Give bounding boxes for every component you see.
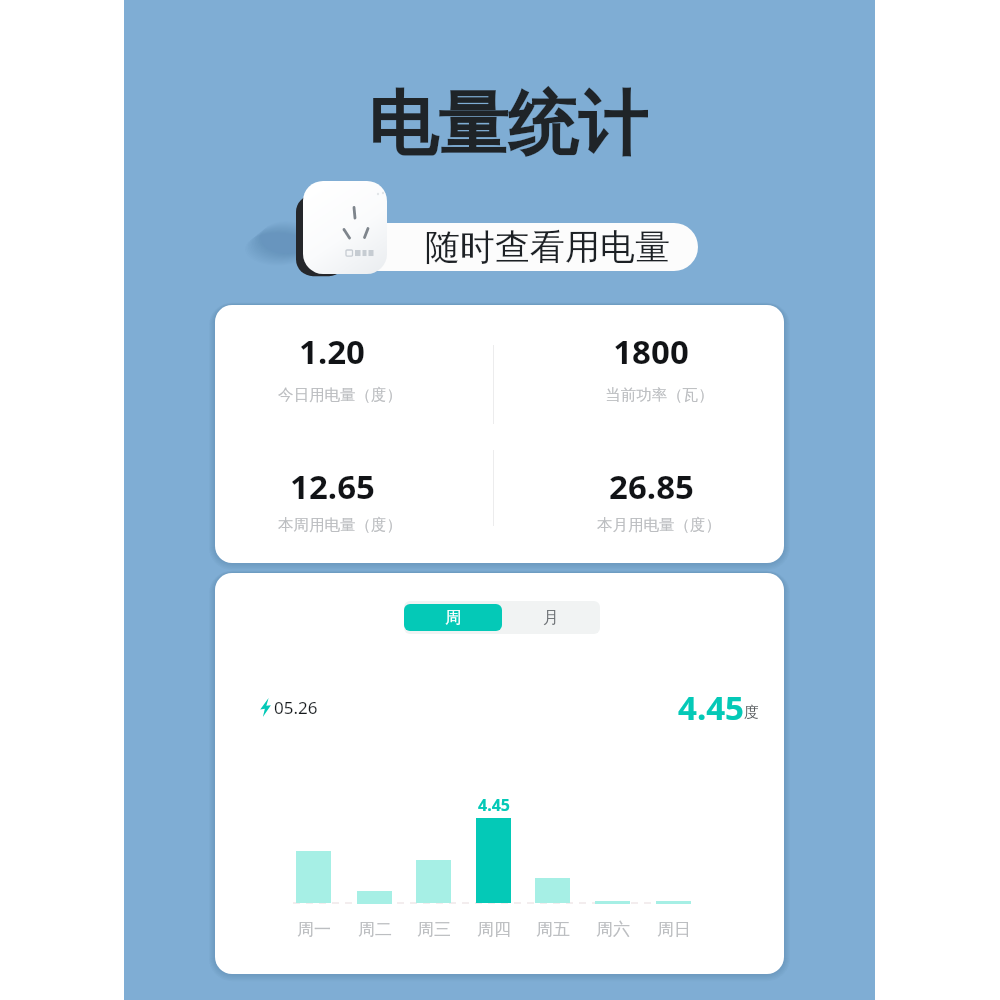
staticText: 今日用电量（度） [278, 385, 402, 405]
button[interactable] [494, 445, 784, 555]
staticText: 26.85 [609, 464, 694, 509]
staticText: 12.65 [290, 464, 375, 509]
staticText: 周二 [358, 919, 392, 940]
button[interactable] [494, 315, 784, 425]
staticText: 4.45 [678, 685, 744, 730]
staticText: 周日 [657, 919, 691, 940]
staticText: 周三 [417, 919, 451, 940]
staticText: 电量统计 [368, 81, 648, 161]
staticText: 05.26 [274, 696, 318, 719]
button[interactable] [215, 445, 505, 555]
button[interactable] [215, 315, 505, 425]
staticText: 周一 [297, 919, 331, 940]
staticText: 当前功率（瓦） [605, 385, 714, 405]
staticText: 4.45 [478, 794, 510, 816]
staticText: 本月用电量（度） [597, 515, 721, 535]
staticText: 月 [543, 608, 559, 628]
staticText: 度 [744, 703, 759, 722]
staticText: 本周用电量（度） [278, 515, 402, 535]
button[interactable]: 周 [404, 604, 502, 631]
staticText: 周六 [596, 919, 630, 940]
staticText: 周四 [477, 919, 511, 940]
staticText: 随时查看用电量 [425, 225, 670, 269]
staticText: 1800 [613, 329, 689, 374]
staticText: 周 [445, 608, 461, 628]
staticText: 1.20 [299, 329, 365, 374]
button[interactable]: 月 [502, 601, 600, 634]
staticText: 周五 [536, 919, 570, 940]
other: Smart plug [292, 176, 392, 280]
